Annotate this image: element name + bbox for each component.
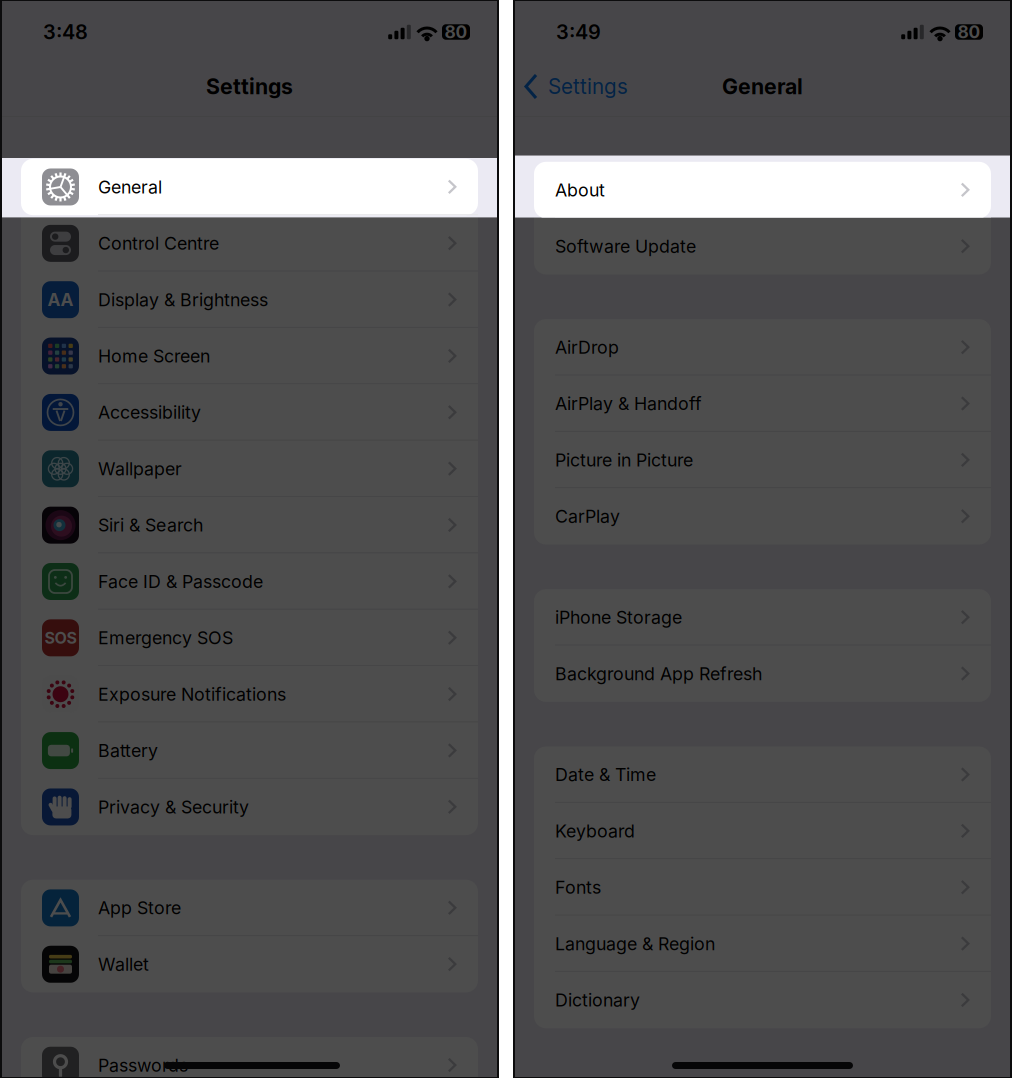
- button[interactable]: Picture in Picture: [534, 432, 991, 488]
- button[interactable]: About: [534, 162, 991, 218]
- staticText: Privacy & Security: [98, 796, 249, 818]
- button[interactable]: SOS: [21, 610, 478, 666]
- button[interactable]: Settings: [524, 68, 628, 94]
- staticText: Fonts: [555, 877, 601, 898]
- button[interactable]: Wallpaper: [21, 441, 478, 497]
- staticText: AirDrop: [555, 337, 619, 358]
- button[interactable]: Battery: [21, 722, 478, 779]
- staticText: AirPlay & Handoff: [555, 393, 702, 414]
- staticText: AA: [47, 289, 73, 310]
- staticText: Emergency SOS: [98, 627, 233, 649]
- staticText: About: [555, 179, 605, 201]
- button[interactable]: Software Update: [534, 218, 991, 275]
- button[interactable]: Passwords: [21, 1037, 478, 1078]
- button[interactable]: AA: [21, 271, 478, 328]
- button[interactable]: Face ID & Passcode: [21, 553, 478, 610]
- staticText: Wallpaper: [98, 458, 182, 480]
- staticText: 80: [957, 21, 980, 42]
- staticText: About: [555, 179, 605, 201]
- staticText: Battery: [98, 740, 158, 761]
- button[interactable]: Privacy & Security: [21, 779, 478, 835]
- staticText: 3:49: [556, 20, 601, 44]
- button[interactable]: Date & Time: [534, 746, 991, 803]
- button[interactable]: Accessibility: [21, 384, 478, 441]
- staticText: Wallet: [98, 953, 149, 975]
- button[interactable]: Siri & Search: [21, 497, 478, 553]
- staticText: Dictionary: [555, 989, 640, 1011]
- button[interactable]: Control Centre: [21, 215, 478, 272]
- button[interactable]: AirPlay & Handoff: [534, 375, 991, 432]
- staticText: Accessibility: [98, 402, 201, 423]
- staticText: Face ID & Passcode: [98, 571, 263, 592]
- staticText: Control Centre: [98, 233, 219, 254]
- staticText: Settings: [548, 74, 628, 99]
- button[interactable]: General: [21, 159, 478, 215]
- staticText: App Store: [98, 897, 181, 919]
- button[interactable]: AirDrop: [534, 319, 991, 375]
- staticText: Siri & Search: [98, 514, 203, 536]
- button[interactable]: Home Screen: [21, 328, 478, 384]
- staticText: Picture in Picture: [555, 449, 693, 471]
- staticText: 80: [444, 21, 467, 42]
- staticText: CarPlay: [555, 506, 620, 527]
- button[interactable]: App Store: [21, 880, 478, 936]
- staticText: 3:48: [43, 20, 88, 44]
- button[interactable]: Background App Refresh: [534, 645, 991, 702]
- staticText: SOS: [44, 628, 76, 648]
- staticText: Passwords: [98, 1054, 188, 1076]
- button[interactable]: Dictionary: [534, 972, 991, 1028]
- staticText: Settings: [206, 74, 293, 99]
- staticText: Language & Region: [555, 933, 715, 954]
- staticText: Background App Refresh: [555, 663, 762, 684]
- button[interactable]: General: [21, 159, 478, 215]
- staticText: Exposure Notifications: [98, 683, 286, 705]
- button[interactable]: Fonts: [534, 859, 991, 916]
- staticText: General: [98, 176, 162, 198]
- button[interactable]: Wallet: [21, 936, 478, 992]
- button[interactable]: CarPlay: [534, 488, 991, 545]
- staticText: Home Screen: [98, 345, 210, 367]
- staticText: iPhone Storage: [555, 607, 682, 628]
- button[interactable]: Exposure Notifications: [21, 666, 478, 722]
- button[interactable]: About: [534, 162, 991, 218]
- button[interactable]: iPhone Storage: [534, 589, 991, 646]
- staticText: General: [98, 176, 162, 198]
- staticText: General: [722, 74, 803, 99]
- button[interactable]: Keyboard: [534, 803, 991, 859]
- button[interactable]: Language & Region: [534, 916, 991, 972]
- staticText: Display & Brightness: [98, 289, 268, 310]
- staticText: Date & Time: [555, 764, 656, 785]
- staticText: Keyboard: [555, 820, 635, 842]
- staticText: Software Update: [555, 236, 696, 257]
